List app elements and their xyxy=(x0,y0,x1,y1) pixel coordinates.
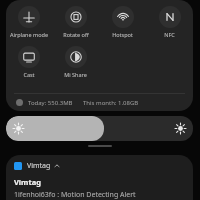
button[interactable]: NFC xyxy=(146,2,193,38)
button[interactable]: Brightness xyxy=(6,116,193,141)
button[interactable]: Today: 550.3MB xyxy=(6,94,193,111)
button[interactable]: Mi Share xyxy=(52,42,99,78)
staticText: Mi Share xyxy=(64,71,87,78)
staticText: NFC xyxy=(164,31,175,38)
button[interactable]: Vimtag xyxy=(14,161,60,171)
staticText: 1ifenhoi63fo : Motion Detecting Alert xyxy=(14,190,136,200)
button[interactable]: Cast xyxy=(6,42,52,78)
button[interactable]: Rotate off xyxy=(52,2,99,38)
staticText: Cast xyxy=(23,71,35,78)
staticText: Airplane mode xyxy=(10,31,48,38)
staticText: Hotspot xyxy=(112,31,133,38)
staticText: Today: 550.3MB xyxy=(28,99,73,107)
button[interactable]: Airplane mode xyxy=(6,2,52,38)
staticText: Rotate off xyxy=(63,31,89,38)
staticText: This month: 1.08GB xyxy=(83,99,139,107)
staticText: Vimtag xyxy=(27,161,51,171)
staticText: Vimtag xyxy=(14,177,41,187)
button[interactable]: Hotspot xyxy=(99,2,146,38)
